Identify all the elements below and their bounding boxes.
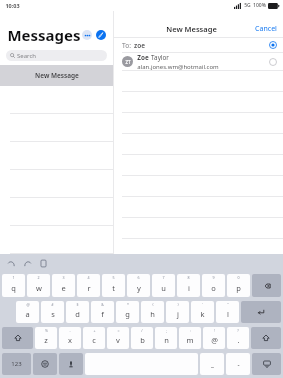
button[interactable]: New Message (0, 65, 113, 86)
staticText: z (44, 335, 48, 345)
staticText: % (45, 328, 48, 333)
button[interactable]: Search (6, 50, 107, 61)
button[interactable]: 8 (177, 274, 200, 297)
button[interactable]: Paste (39, 259, 48, 268)
staticText: - (237, 360, 240, 369)
staticText: 5 (112, 275, 115, 280)
staticText: 10:03 (5, 2, 20, 9)
button[interactable]: Emoji (33, 353, 57, 375)
button[interactable]: # (41, 301, 64, 323)
button[interactable]: ! (203, 327, 225, 349)
staticText: i (188, 283, 190, 293)
button[interactable]: $ (66, 301, 89, 323)
staticText: - (69, 328, 71, 333)
staticText: q (11, 283, 16, 293)
staticText: a (25, 309, 30, 319)
button[interactable]: - (226, 353, 250, 375)
button[interactable]: 9 (202, 274, 225, 297)
staticText: f (101, 309, 104, 319)
staticText: . (237, 335, 240, 345)
button[interactable]: - (59, 327, 81, 349)
staticText: Messages (7, 25, 81, 45)
staticText: 6 (137, 275, 140, 280)
staticText: j (177, 309, 179, 319)
button[interactable]: 2 (27, 274, 50, 297)
button[interactable]: 1 (2, 274, 25, 297)
button[interactable]: * (116, 301, 139, 323)
staticText: 2 (37, 275, 40, 280)
staticText: # (51, 302, 54, 307)
staticText: + (93, 328, 96, 333)
staticText: @ (211, 335, 218, 345)
staticText: p (236, 283, 241, 293)
button[interactable]: = (107, 327, 129, 349)
staticText: $ (76, 302, 79, 307)
staticText: zoe (134, 41, 145, 50)
button[interactable]: ' (191, 301, 214, 323)
staticText: 4 (87, 275, 90, 280)
button[interactable]: Backspace (252, 274, 281, 297)
staticText: ! (214, 328, 215, 333)
staticText: : (190, 328, 191, 333)
staticText: y (137, 283, 141, 293)
button[interactable]: 4 (77, 274, 100, 297)
button[interactable]: 123 (2, 353, 31, 375)
staticText: New Message (35, 71, 79, 80)
button[interactable]: ( (141, 301, 164, 323)
staticText: Zoe (137, 53, 149, 62)
button[interactable]: Return (241, 301, 281, 323)
staticText: m (186, 335, 194, 345)
button[interactable]: 5 (102, 274, 125, 297)
staticText: h (150, 309, 155, 319)
button[interactable]: : (179, 327, 201, 349)
button[interactable]: ) (166, 301, 189, 323)
button[interactable]: Hide keyboard (252, 353, 281, 375)
button[interactable]: Contact info (269, 58, 277, 66)
staticText: c (92, 335, 96, 345)
button[interactable]: & (91, 301, 114, 323)
button[interactable]: 0 (227, 274, 250, 297)
staticText: x (68, 335, 72, 345)
staticText: 100% (253, 2, 266, 9)
button[interactable]: _ (200, 353, 224, 375)
staticText: * (127, 302, 129, 307)
button[interactable]: / (131, 327, 153, 349)
staticText: Cancel (255, 24, 277, 34)
button[interactable]: 3 (52, 274, 75, 297)
staticText: b (140, 335, 145, 345)
staticText: / (141, 328, 143, 333)
button[interactable]: 7 (152, 274, 175, 297)
staticText: l (227, 309, 229, 319)
button[interactable]: " (216, 301, 239, 323)
staticText: & (101, 302, 104, 307)
staticText: 3 (62, 275, 65, 280)
staticText: ) (177, 302, 179, 307)
button[interactable]: Add contact (269, 41, 277, 49)
button[interactable]: Shift (251, 327, 281, 349)
staticText: s (51, 309, 55, 319)
button[interactable]: Cancel (249, 21, 283, 37)
button[interactable]: ZT (114, 53, 283, 70)
button[interactable]: Dictation (59, 353, 83, 375)
button[interactable]: + (83, 327, 105, 349)
staticText: ; (166, 328, 167, 333)
button[interactable]: To: (114, 38, 283, 52)
button[interactable]: % (35, 327, 57, 349)
staticText: o (211, 283, 216, 293)
button[interactable]: 6 (127, 274, 150, 297)
staticText: Taylor (151, 53, 169, 62)
button[interactable]: ? (227, 327, 249, 349)
button[interactable]: Redo (23, 259, 32, 268)
staticText: " (227, 302, 229, 307)
button[interactable]: New Message (96, 30, 106, 40)
button[interactable]: Undo (7, 259, 16, 268)
staticText: u (161, 283, 166, 293)
button[interactable]: @ (16, 301, 39, 323)
button[interactable]: ; (155, 327, 177, 349)
staticText: = (117, 328, 120, 333)
button[interactable]: More options (82, 30, 92, 40)
staticText: 1 (12, 275, 15, 280)
button[interactable]: Shift (2, 327, 33, 349)
staticText: w (36, 283, 42, 293)
